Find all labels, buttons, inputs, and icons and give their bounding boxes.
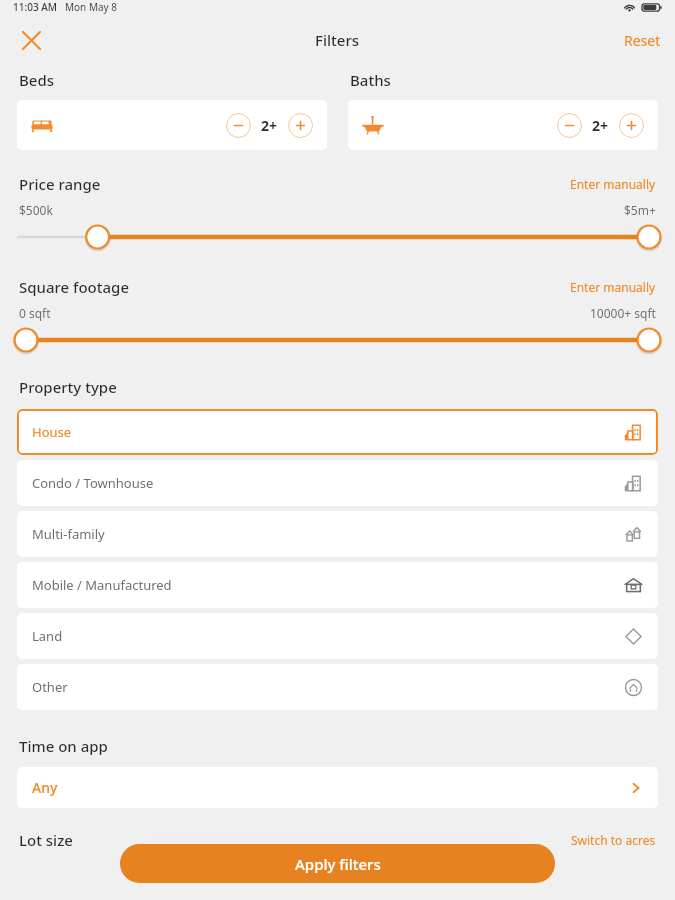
staticText: Multi-family <box>32 525 105 543</box>
button[interactable]: Multi-family <box>17 511 658 557</box>
staticText: Beds <box>19 70 55 90</box>
staticText: Filters <box>315 30 360 50</box>
staticText: Enter manually <box>570 279 656 295</box>
staticText: 2+ <box>261 116 278 135</box>
staticText: Baths <box>350 70 391 90</box>
button[interactable]: Decrease <box>557 113 582 138</box>
staticText: Square footage <box>19 277 130 297</box>
staticText: Land <box>32 627 63 645</box>
button[interactable]: Switch to acres <box>571 832 656 848</box>
staticText: Any <box>32 778 58 797</box>
staticText: Mon May 8 <box>65 0 117 14</box>
button[interactable]: Increase <box>619 113 644 138</box>
staticText: Mobile / Manufactured <box>32 576 172 594</box>
button[interactable]: Condo / Townhouse <box>17 460 658 506</box>
staticText: Property type <box>19 377 117 397</box>
button[interactable]: House <box>17 409 658 455</box>
staticText: 11:03 AM <box>13 0 57 14</box>
staticText: Enter manually <box>570 176 656 192</box>
staticText: Time on app <box>19 736 108 756</box>
button[interactable]: Square footage slider <box>0 325 675 355</box>
staticText: 10000+ sqft <box>590 305 656 321</box>
button[interactable]: Other <box>17 664 658 710</box>
button[interactable]: Mobile / Manufactured <box>17 562 658 608</box>
button[interactable]: Decrease <box>17 100 327 150</box>
button[interactable]: Any <box>17 767 658 808</box>
button[interactable]: Reset <box>624 31 661 50</box>
staticText: 2+ <box>592 116 609 135</box>
button[interactable]: Decrease <box>226 113 251 138</box>
button[interactable]: Price range slider <box>0 222 675 252</box>
staticText: Lot size <box>19 830 73 850</box>
staticText: Other <box>32 678 68 696</box>
button[interactable]: Increase <box>288 113 313 138</box>
button[interactable]: Enter manually <box>570 279 656 295</box>
staticText: $500k <box>19 202 53 218</box>
button[interactable]: Close <box>14 23 48 57</box>
staticText: Apply filters <box>295 854 381 874</box>
staticText: Condo / Townhouse <box>32 474 154 492</box>
staticText: Switch to acres <box>571 832 656 848</box>
staticText: House <box>32 423 72 441</box>
staticText: $5m+ <box>624 202 656 218</box>
staticText: Reset <box>624 31 661 50</box>
button[interactable]: Apply filters <box>120 844 555 883</box>
button[interactable]: Decrease <box>348 100 658 150</box>
staticText: 0 sqft <box>19 305 51 321</box>
button[interactable]: Land <box>17 613 658 659</box>
staticText: Price range <box>19 174 101 194</box>
button[interactable]: Enter manually <box>570 176 656 192</box>
